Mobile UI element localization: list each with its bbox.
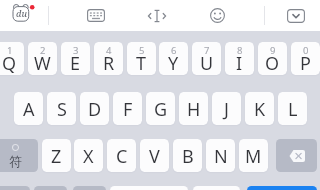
staticText: 4 [106, 44, 112, 57]
button[interactable]: J [212, 92, 241, 125]
button[interactable]: H [179, 92, 208, 125]
button[interactable]: Key [73, 186, 106, 190]
staticText: Y [168, 51, 179, 75]
button[interactable]: D [80, 92, 109, 125]
button[interactable]: P [291, 42, 320, 75]
button[interactable]: L [278, 92, 307, 125]
button[interactable]: Key [0, 186, 30, 190]
staticText: C [116, 144, 128, 169]
staticText: R [103, 51, 115, 75]
button[interactable]: N [206, 139, 235, 172]
staticText: 3 [73, 44, 79, 57]
button[interactable]: Z [42, 139, 71, 172]
staticText: V [149, 144, 160, 169]
button[interactable]: O [258, 42, 287, 75]
button[interactable]: C [107, 139, 136, 172]
button[interactable]: K [245, 92, 274, 125]
staticText: Q [2, 51, 17, 75]
staticText: 6 [171, 44, 177, 57]
button[interactable]: 符 [0, 139, 38, 172]
staticText: X [83, 144, 94, 169]
staticText: U [200, 51, 214, 75]
staticText: G [154, 97, 168, 122]
button[interactable]: Emoji [195, 0, 240, 31]
staticText: H [187, 97, 201, 122]
staticText: L [288, 97, 298, 122]
staticText: F [123, 97, 133, 122]
button[interactable]: Enter [247, 186, 317, 190]
staticText: N [214, 144, 228, 169]
staticText: Z [51, 144, 62, 169]
button[interactable]: Q [0, 42, 24, 75]
staticText: D [88, 97, 102, 122]
staticText: E [70, 51, 81, 75]
staticText: 1 [7, 44, 13, 57]
staticText: P [300, 51, 311, 75]
button[interactable]: R [94, 42, 123, 75]
staticText: W [34, 51, 51, 75]
button[interactable]: E [61, 42, 90, 75]
staticText: I [236, 51, 243, 75]
button[interactable]: B [173, 139, 202, 172]
button[interactable]: Hide keyboard [273, 0, 318, 31]
button[interactable]: G [146, 92, 175, 125]
button[interactable]: S [47, 92, 76, 125]
button[interactable]: Space [110, 186, 188, 190]
button[interactable]: F [113, 92, 142, 125]
button[interactable]: T [127, 42, 156, 75]
button[interactable]: Move cursor [134, 0, 179, 31]
button[interactable]: Y [159, 42, 188, 75]
button[interactable]: A [14, 92, 43, 125]
button[interactable]: Switch keyboard layout [73, 0, 118, 31]
button[interactable]: V [140, 139, 169, 172]
staticText: S [57, 97, 67, 122]
staticText: T [136, 51, 147, 75]
staticText: 8 [237, 44, 243, 57]
staticText: M [245, 144, 262, 169]
button[interactable]: W [28, 42, 57, 75]
staticText: 5 [139, 44, 145, 57]
staticText: 2 [40, 44, 46, 57]
staticText: du [16, 7, 27, 19]
button[interactable]: Space [193, 186, 240, 190]
button[interactable]: Key [34, 186, 67, 190]
staticText: O [265, 51, 280, 75]
staticText: B [182, 144, 194, 169]
staticText: 9 [270, 44, 276, 57]
staticText: 0 [303, 44, 309, 57]
staticText: 7 [204, 44, 210, 57]
button[interactable]: I [225, 42, 254, 75]
button[interactable]: M [239, 139, 268, 172]
button[interactable]: Backspace [276, 139, 317, 172]
button[interactable]: X [74, 139, 103, 172]
staticText: 符 [9, 153, 22, 169]
button[interactable]: Baidu input settings [0, 0, 48, 31]
staticText: J [224, 97, 229, 122]
staticText: A [23, 97, 35, 122]
staticText: K [254, 97, 266, 122]
button[interactable]: U [192, 42, 221, 75]
